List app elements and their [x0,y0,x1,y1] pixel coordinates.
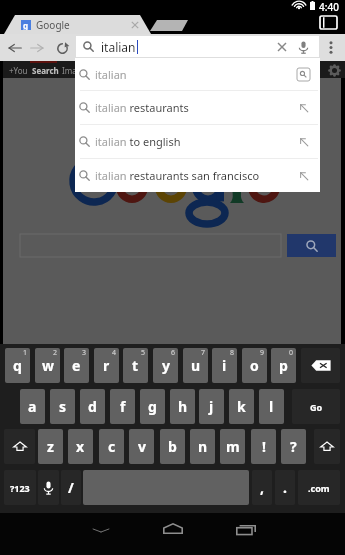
button[interactable]: Settings [326,62,342,78]
button[interactable]: italian [75,58,320,90]
button[interactable]: italian restaurants san francisco [75,159,320,192]
staticText: 2 [53,348,58,358]
button[interactable]: Back [3,36,27,60]
button[interactable]: italian [76,36,319,57]
button[interactable]: z [38,429,63,464]
button[interactable]: g [140,389,165,424]
staticText: k [237,397,246,416]
button[interactable]: j [199,389,224,424]
button[interactable]: x [68,429,93,464]
staticText: b [168,437,177,456]
staticText: y [162,356,170,375]
staticText: n [198,437,208,456]
staticText: 6 [171,348,176,358]
staticText: i [222,356,227,375]
button[interactable]: q [5,348,30,383]
staticText: j [209,397,214,416]
staticText: x [76,437,85,456]
button[interactable]: s [50,389,75,424]
staticText: / [68,478,74,497]
button[interactable]: a [20,389,45,424]
staticText: italian restaurants san francisco [95,168,260,183]
staticText: f [120,397,126,416]
staticText: w [42,356,54,375]
button[interactable]: h [170,389,195,424]
staticText: a [28,397,37,416]
button[interactable]: italian to english [75,125,320,158]
staticText: z [47,437,54,456]
button[interactable]: italian restaurants [75,91,320,124]
button[interactable]: u [183,348,208,383]
staticText: italian [95,67,127,82]
button[interactable]: Hide keyboard [83,518,119,544]
button[interactable]: ? [281,429,306,464]
staticText: s [59,397,67,416]
button[interactable]: v [129,429,154,464]
staticText: v [138,437,146,456]
button[interactable]: i [212,348,237,383]
button[interactable]: Go [292,389,340,424]
button[interactable]: Recent apps [228,518,264,544]
button[interactable]: c [99,429,124,464]
button[interactable]: t [123,348,148,383]
button[interactable]: Home [155,518,191,544]
button[interactable]: r [94,348,119,383]
staticText: Search [32,65,59,76]
staticText: c [108,437,116,456]
button[interactable]: ?123 [4,470,36,505]
button[interactable]: Clear [273,38,291,56]
button[interactable]: l [259,389,284,424]
button[interactable]: More options [320,36,342,58]
button[interactable]: b [160,429,185,464]
button[interactable]: p [271,348,296,383]
button[interactable]: Voice search [294,38,312,56]
button[interactable]: Tab switcher [316,14,340,38]
staticText: ?123 [10,482,30,494]
staticText: r [103,356,110,375]
button[interactable]: ! [251,429,276,464]
button[interactable]: Forward [25,36,49,60]
button[interactable]: shift [314,429,340,464]
staticText: 1 [23,348,28,358]
staticText: 8 [230,348,235,358]
staticText: italian restaurants [95,100,189,115]
button[interactable]: e [64,348,89,383]
staticText: g [23,20,29,30]
button[interactable]: Reload [50,36,74,60]
button[interactable]: / [61,470,81,505]
button[interactable]: Close tab [127,17,142,32]
button[interactable]: bksp [301,348,340,383]
staticText: 0 [289,348,294,358]
staticText: 4:40 [319,0,339,14]
button[interactable]: .com [298,470,340,505]
staticText: italian to english [95,134,181,149]
button[interactable]: f [110,389,135,424]
staticText: 7 [201,348,206,358]
button[interactable]: shift [4,429,35,464]
button[interactable]: o [242,348,267,383]
staticText: 4 [112,348,117,358]
button[interactable]: . [275,470,295,505]
staticText: q [13,356,22,375]
staticText: .com [308,482,330,494]
button[interactable]: k [229,389,254,424]
button[interactable]: mic [38,470,59,505]
button[interactable]: m [220,429,245,464]
button[interactable]: d [80,389,105,424]
button[interactable]: , [252,470,272,505]
staticText: h [178,397,188,416]
staticText: 9 [260,348,265,358]
staticText: Go [310,401,323,413]
staticText: . [283,478,287,497]
button[interactable]: Google Search [287,234,336,257]
button[interactable]: y [153,348,178,383]
staticText: 3 [82,348,87,358]
staticText: Images [62,65,90,76]
staticText: 5 [141,348,146,358]
button[interactable]: n [190,429,215,464]
staticText: ? [290,437,297,456]
button[interactable]: w [35,348,60,383]
staticText: Google [36,18,70,32]
